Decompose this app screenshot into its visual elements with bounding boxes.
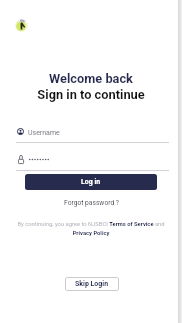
button[interactable] [16, 154, 169, 172]
staticText: By continuing, you agree to NJSBCI Terms… [15, 221, 167, 236]
button[interactable]: Username [16, 126, 169, 144]
other: App logo [15, 19, 28, 32]
staticText: Forgot password ? [64, 199, 119, 207]
staticText: Sign in to continue [0, 87, 182, 102]
staticText: Skip Login [75, 280, 109, 288]
button[interactable]: Log in [25, 174, 157, 190]
staticText: Welcome back [0, 71, 182, 86]
staticText: Username [28, 129, 60, 137]
button[interactable]: Forgot password ? [60, 197, 123, 209]
button[interactable]: Skip Login [65, 277, 119, 291]
staticText: Log in [81, 178, 101, 186]
